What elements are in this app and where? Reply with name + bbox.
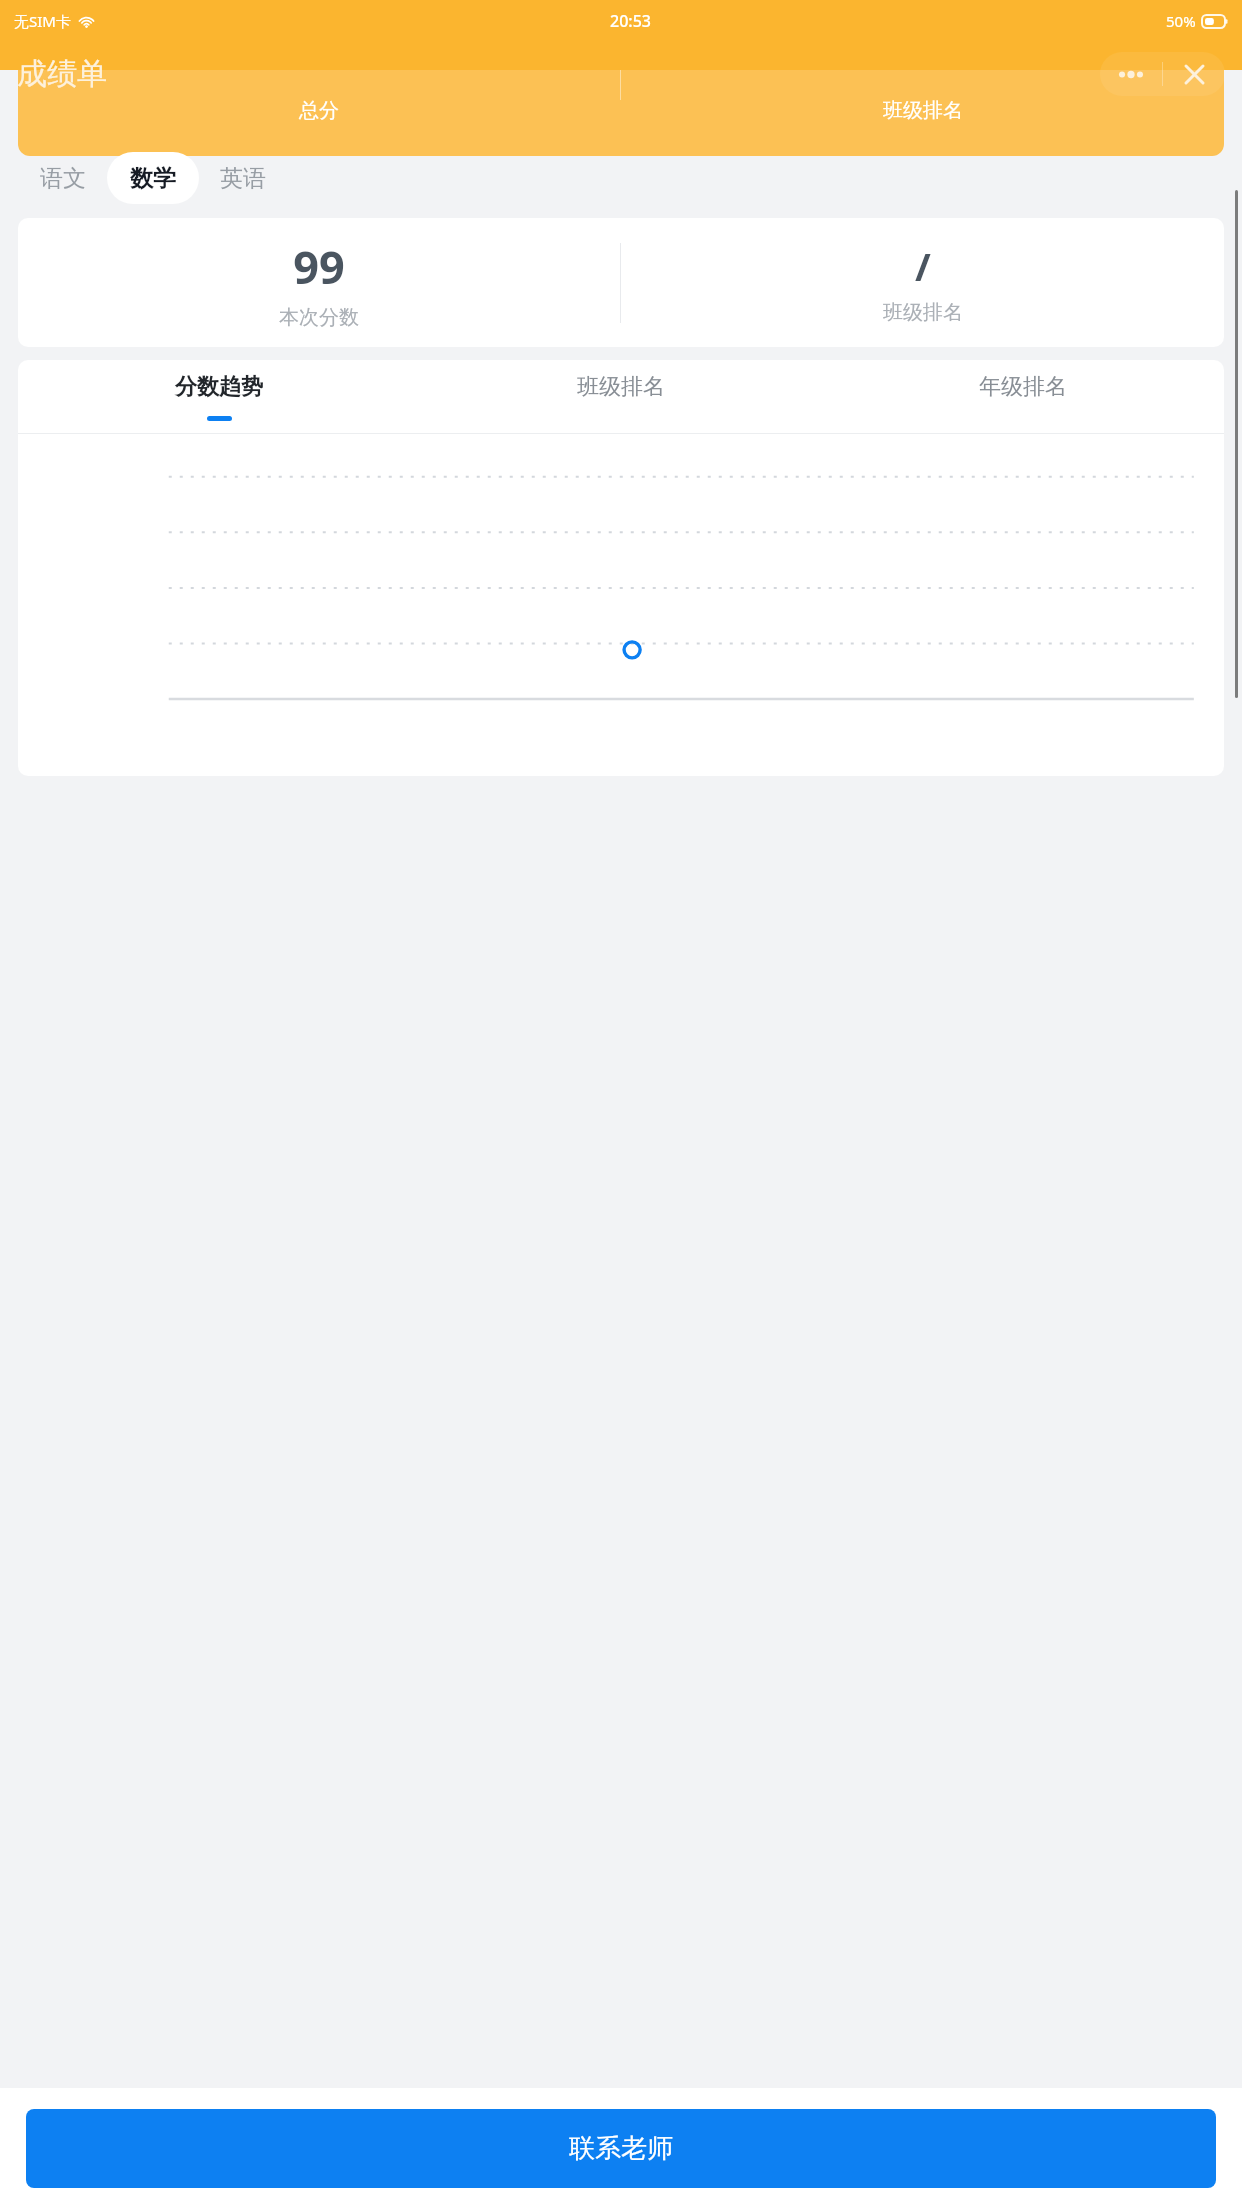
staticText: 分数趋势 [175, 373, 263, 401]
staticText: 语文 [40, 164, 86, 193]
button[interactable]: 分数趋势 [18, 360, 420, 433]
staticText: 班级排名 [577, 373, 665, 401]
staticText: 英语 [220, 164, 266, 193]
button[interactable]: 数学 [130, 152, 176, 204]
button[interactable]: Close [1163, 52, 1225, 96]
staticText: 20:53 [610, 10, 651, 32]
button[interactable]: 99 [18, 218, 1224, 347]
button[interactable]: 班级排名 [420, 360, 822, 433]
staticText: 班级排名 [883, 300, 963, 325]
staticText: 50% [1166, 11, 1196, 31]
staticText: 无SIM卡 [14, 11, 71, 31]
button[interactable]: 语文 [40, 152, 86, 204]
button[interactable]: 成绩单 [17, 55, 107, 93]
staticText: 总分 [299, 98, 339, 123]
button[interactable]: 联系老师 [26, 2109, 1216, 2188]
staticText: 数学 [130, 164, 176, 193]
staticText: / [915, 240, 931, 292]
staticText: 联系老师 [569, 2132, 673, 2165]
button[interactable]: 总分 [18, 36, 1224, 156]
staticText: 班级排名 [883, 98, 963, 123]
button[interactable]: More options [1100, 52, 1162, 96]
staticText: 99 [293, 236, 345, 297]
button[interactable]: 英语 [220, 152, 266, 204]
staticText: 本次分数 [279, 305, 359, 330]
button[interactable]: 年级排名 [822, 360, 1224, 433]
staticText: 年级排名 [979, 373, 1067, 401]
